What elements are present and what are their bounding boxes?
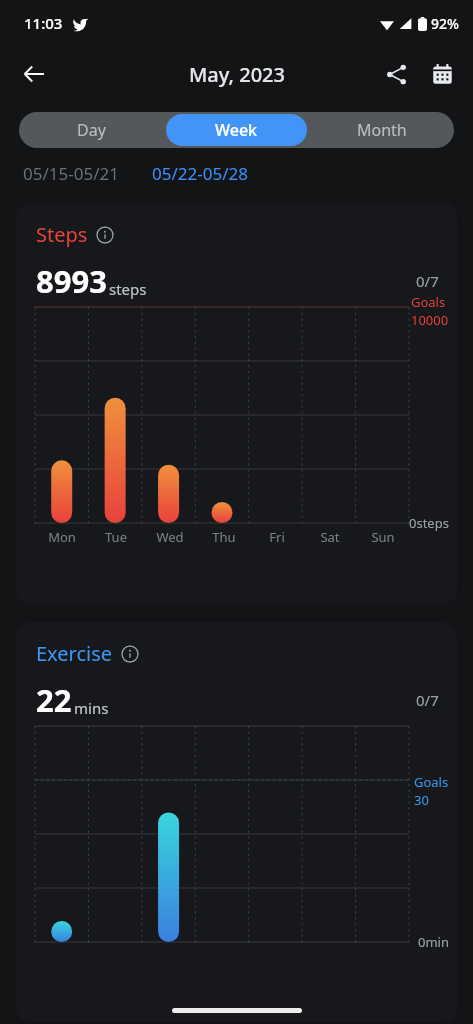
staticText: 11:03 — [24, 13, 63, 33]
staticText: 0/7 — [416, 690, 439, 710]
staticText: 05/22-05/28 — [152, 162, 248, 185]
staticText: 0steps — [409, 514, 449, 532]
staticText: Mon — [48, 528, 76, 546]
button[interactable]: Share — [375, 53, 417, 95]
staticText: 92% — [431, 14, 459, 33]
staticText: Tue — [105, 528, 127, 546]
staticText: 10000 — [411, 311, 449, 329]
staticText: Day — [77, 119, 106, 141]
staticText: steps — [109, 279, 147, 299]
button[interactable]: Info about Steps — [96, 226, 114, 244]
button[interactable]: Day — [21, 114, 162, 146]
staticText: 30 — [414, 791, 429, 809]
staticText: Exercise — [36, 640, 113, 667]
staticText: May, 2023 — [189, 61, 285, 88]
staticText: 05/15-05/21 — [23, 162, 119, 185]
button[interactable]: Exercise — [16, 622, 457, 1022]
button[interactable]: Info about Exercise — [121, 645, 139, 663]
staticText: Week — [215, 119, 258, 141]
staticText: 22 — [36, 679, 72, 721]
button[interactable]: Calendar — [421, 53, 463, 95]
staticText: Goals — [411, 293, 446, 311]
staticText: 8993 — [36, 260, 107, 302]
staticText: 0min — [418, 933, 449, 951]
button[interactable]: Week — [166, 114, 307, 146]
button[interactable]: 05/22-05/28 — [152, 162, 248, 185]
staticText: Month — [357, 119, 407, 141]
staticText: mins — [74, 698, 109, 718]
button[interactable]: Month — [311, 114, 452, 146]
staticText: Thu — [212, 528, 236, 546]
button[interactable]: Steps — [16, 203, 457, 604]
button[interactable]: 05/15-05/21 — [23, 162, 119, 185]
staticText: Sat — [320, 528, 340, 546]
button[interactable]: Back — [12, 52, 56, 96]
staticText: Wed — [156, 528, 184, 546]
staticText: Goals — [414, 773, 449, 791]
staticText: Fri — [269, 528, 285, 546]
staticText: 0/7 — [416, 271, 439, 291]
staticText: Sun — [371, 528, 395, 546]
staticText: Steps — [36, 221, 88, 248]
